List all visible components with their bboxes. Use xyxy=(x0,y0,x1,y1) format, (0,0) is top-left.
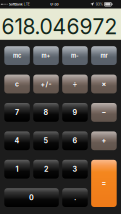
button[interactable]: 5 xyxy=(33,131,59,150)
button[interactable]: Decimal point xyxy=(62,188,88,207)
button[interactable]: 0 xyxy=(4,188,59,207)
button[interactable]: 4 xyxy=(4,131,30,150)
staticText: 4 xyxy=(15,136,20,145)
staticText: 7 xyxy=(15,108,19,117)
staticText: 9 xyxy=(72,108,77,117)
button[interactable]: Plus minus xyxy=(33,75,59,93)
staticText: 8 xyxy=(43,108,48,117)
button[interactable]: Memory recall xyxy=(91,46,117,65)
staticText: × xyxy=(101,80,106,88)
staticText: 1 xyxy=(16,165,19,173)
button[interactable]: 8 xyxy=(33,103,59,122)
button[interactable]: 1 xyxy=(4,160,30,179)
staticText: 3 xyxy=(72,165,77,173)
staticText: 2 xyxy=(44,165,48,173)
staticText: − xyxy=(101,108,106,117)
staticText: 0 xyxy=(29,193,34,202)
staticText: 0:33 xyxy=(50,2,58,6)
staticText: . xyxy=(74,193,76,202)
staticText: LTE xyxy=(24,2,30,6)
button[interactable]: 2 xyxy=(33,160,59,179)
staticText: 618.046972 xyxy=(1,14,117,39)
staticText: mc xyxy=(13,52,21,59)
staticText: 5 xyxy=(43,136,48,145)
button[interactable]: Plus xyxy=(91,131,117,150)
staticText: 6 xyxy=(72,136,77,145)
button[interactable]: Memory add xyxy=(33,46,59,65)
staticText: c xyxy=(15,80,19,88)
staticText: 93% xyxy=(96,2,103,6)
staticText: + xyxy=(101,136,106,145)
staticText: mr xyxy=(100,52,107,59)
staticText: ÷ xyxy=(72,80,77,88)
button[interactable]: 6 xyxy=(62,131,88,150)
button[interactable]: Multiply xyxy=(91,75,117,93)
button[interactable]: Divide xyxy=(62,75,88,93)
staticText: m+ xyxy=(41,52,50,59)
staticText: m- xyxy=(71,52,79,59)
button[interactable]: Memory subtract xyxy=(62,46,88,65)
button[interactable]: Equals xyxy=(91,160,117,207)
button[interactable]: Clear xyxy=(4,75,30,93)
staticText: SoftBank xyxy=(9,2,23,6)
staticText: = xyxy=(101,179,106,188)
staticText: +/- xyxy=(40,80,51,88)
button[interactable]: 3 xyxy=(62,160,88,179)
button[interactable]: Memory clear xyxy=(4,46,30,65)
button[interactable]: Minus xyxy=(91,103,117,122)
button[interactable]: 7 xyxy=(4,103,30,122)
button[interactable]: 9 xyxy=(62,103,88,122)
